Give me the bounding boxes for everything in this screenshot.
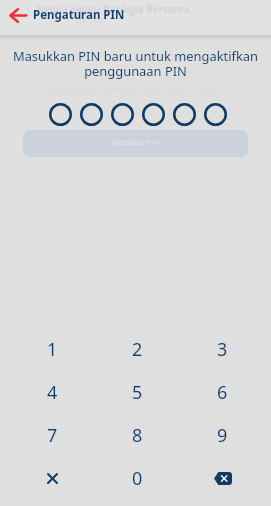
staticText: Pengaturan PIN [33,7,125,23]
staticText: 9 [217,423,228,448]
button[interactable]: 6 [180,371,265,414]
staticText: Masukkan PIN baru untuk mengaktifkan pen… [8,47,263,80]
button[interactable]: Back [5,2,31,28]
staticText: A823157 [77,16,106,26]
staticText: Kelola Selalu Bahagia Bersama [37,2,190,16]
button[interactable]: 4 [9,371,95,414]
button[interactable]: 5 [95,371,180,414]
button[interactable]: 1 [9,328,95,371]
staticText: Aktifkan PIN [112,137,160,147]
staticText: 2 [132,337,143,362]
button[interactable]: 9 [180,414,265,457]
staticText: 0 [132,466,143,491]
button[interactable]: 8 [95,414,180,457]
staticText: 8 [132,423,143,448]
button[interactable]: 7 [9,414,95,457]
staticText: 4 [47,380,58,405]
staticText: 6 [217,380,228,405]
staticText: 7 [47,423,58,448]
button[interactable]: 3 [180,328,265,371]
staticText: 1 [47,337,58,362]
staticText: 3 [217,337,228,362]
button[interactable]: Clear [9,457,95,500]
staticText: 5 [132,380,143,405]
button[interactable]: 0 [95,457,180,500]
button[interactable]: Backspace [180,457,265,500]
button[interactable]: 2 [95,328,180,371]
